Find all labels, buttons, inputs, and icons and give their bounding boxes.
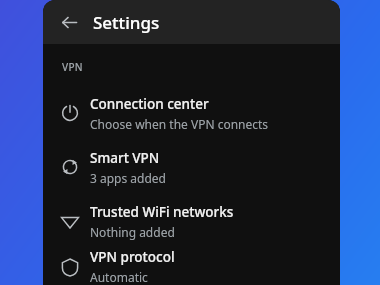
staticText: Choose when the VPN connects — [90, 116, 269, 132]
button[interactable]: Back — [55, 8, 83, 36]
staticText: 3 apps added — [90, 170, 166, 186]
button[interactable]: Connection center — [43, 86, 340, 140]
staticText: VPN protocol — [90, 248, 175, 266]
staticText: Settings — [93, 11, 160, 34]
button[interactable]: Trusted WiFi networks — [43, 194, 340, 248]
button[interactable]: VPN protocol — [43, 248, 340, 285]
staticText: Nothing added — [90, 224, 175, 240]
staticText: Connection center — [90, 95, 209, 113]
staticText: Smart VPN — [90, 149, 160, 167]
staticText: Trusted WiFi networks — [90, 203, 234, 221]
button[interactable]: Smart VPN — [43, 140, 340, 194]
staticText: VPN — [62, 60, 83, 74]
staticText: Automatic — [90, 269, 148, 285]
